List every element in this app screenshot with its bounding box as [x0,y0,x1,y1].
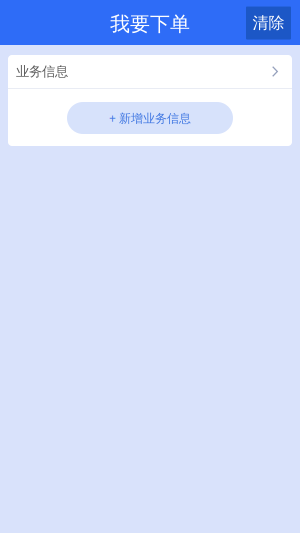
button[interactable]: 清除 [246,6,291,39]
staticText: + 新增业务信息 [109,110,191,126]
staticText: 我要下单 [110,12,190,36]
button[interactable]: 业务信息 [8,55,292,88]
button[interactable]: + 新增业务信息 [67,102,233,134]
staticText: 清除 [252,13,284,33]
staticText: 业务信息 [16,63,68,80]
